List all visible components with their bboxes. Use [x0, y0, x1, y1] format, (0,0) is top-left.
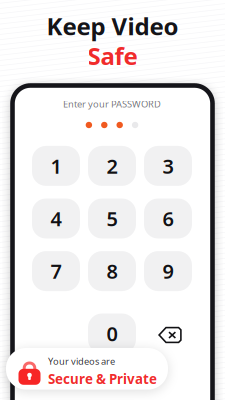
button[interactable]: 1 [32, 146, 80, 186]
staticText: Your videos are [48, 355, 115, 367]
button[interactable]: 3 [144, 146, 192, 186]
button[interactable]: Delete [144, 313, 192, 353]
staticText: 8 [106, 258, 117, 284]
staticText: 0 [106, 320, 117, 347]
staticText: 6 [162, 205, 173, 232]
staticText: 9 [162, 258, 173, 284]
staticText: 5 [106, 205, 117, 232]
staticText: Safe [87, 40, 137, 72]
staticText: 1 [50, 153, 61, 179]
staticText: 2 [106, 153, 117, 179]
staticText: Keep Video [46, 10, 178, 42]
staticText: Enter your PASSWORD [63, 98, 161, 110]
button[interactable]: 6 [144, 198, 192, 238]
button[interactable]: 2 [88, 146, 136, 186]
staticText: 3 [162, 153, 173, 179]
button[interactable]: 9 [144, 251, 192, 291]
staticText: 4 [50, 205, 61, 232]
staticText: Secure & Private [48, 370, 157, 388]
button[interactable]: 7 [32, 251, 80, 291]
button[interactable]: 5 [88, 198, 136, 238]
button[interactable]: 0 [88, 313, 136, 353]
button[interactable]: 8 [88, 251, 136, 291]
button[interactable]: 4 [32, 198, 80, 238]
staticText: 7 [50, 258, 61, 284]
